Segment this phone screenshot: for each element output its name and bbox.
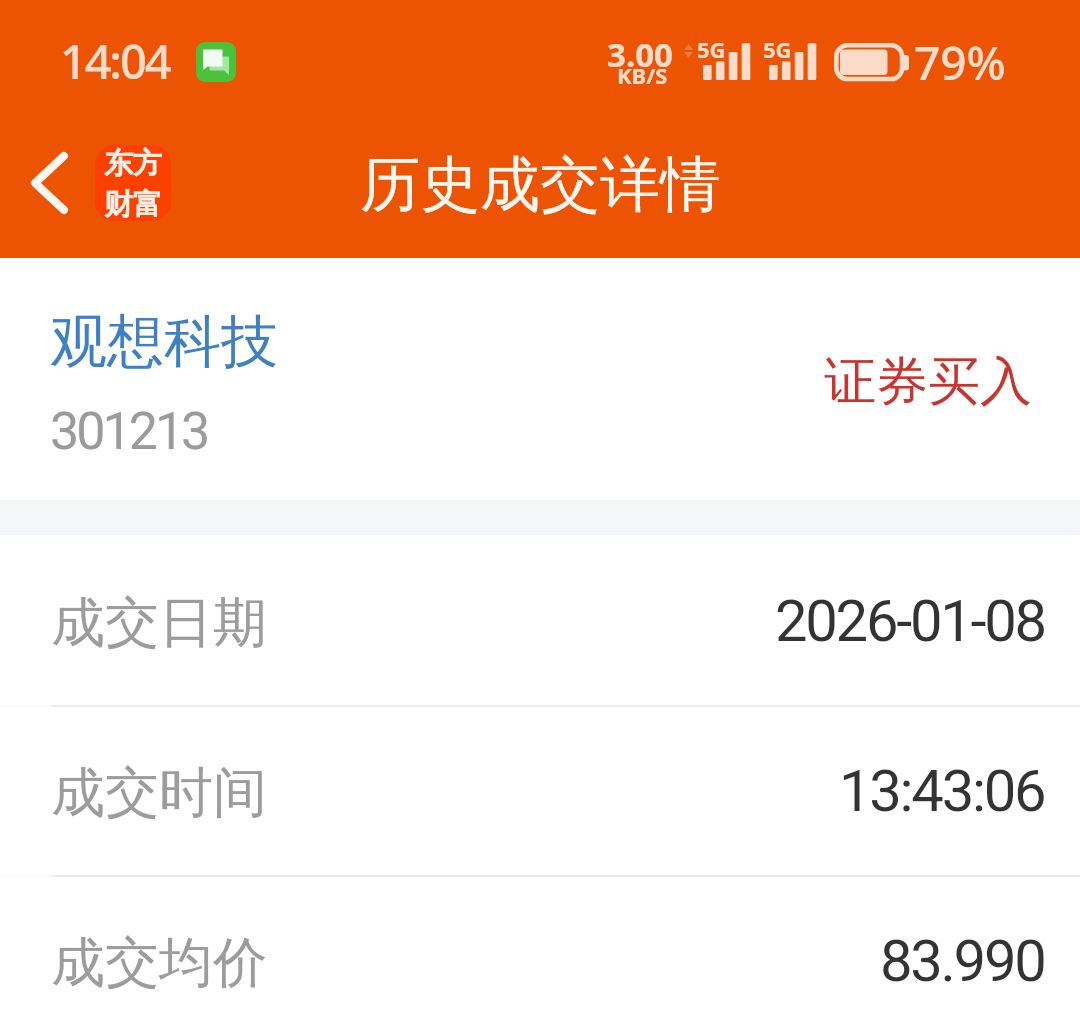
staticText: 观想科技 xyxy=(50,306,278,378)
staticText: 历史成交详情 xyxy=(360,147,720,223)
staticText: 5G xyxy=(697,34,726,64)
button[interactable]: 成交日期 xyxy=(0,535,1080,705)
staticText: 东方 xyxy=(104,145,162,182)
staticText: 13:43:06 xyxy=(839,757,1045,825)
button[interactable]: 成交均价 xyxy=(0,875,1080,1026)
staticText: 成交时间 xyxy=(51,759,267,827)
button[interactable]: 成交时间 xyxy=(0,705,1080,875)
staticText: KB/S xyxy=(617,60,668,90)
button[interactable]: Back xyxy=(8,135,90,231)
staticText: 财富 xyxy=(104,186,162,221)
staticText: 79% xyxy=(914,31,1006,94)
staticText: 83.990 xyxy=(880,927,1045,995)
staticText: 2026-01-08 xyxy=(775,587,1045,655)
staticText: 3.00 xyxy=(607,32,673,77)
staticText: 301213 xyxy=(50,401,208,462)
staticText: 成交日期 xyxy=(51,589,267,657)
staticText: 5G xyxy=(763,34,792,64)
staticText: 14:04 xyxy=(60,29,170,93)
staticText: 成交均价 xyxy=(51,929,267,997)
staticText: 证券买入 xyxy=(824,349,1032,415)
button[interactable]: 观想科技 xyxy=(0,258,1080,500)
button[interactable]: East Money xyxy=(95,145,171,221)
